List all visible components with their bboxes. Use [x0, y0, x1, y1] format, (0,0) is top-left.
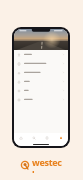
button[interactable] [14, 77, 68, 86]
button[interactable] [14, 50, 68, 59]
staticText: westech [32, 156, 64, 173]
button[interactable] [14, 95, 68, 104]
button[interactable] [14, 86, 68, 95]
button[interactable]: Search [27, 133, 40, 143]
button[interactable] [14, 59, 68, 68]
button[interactable] [14, 68, 68, 77]
button[interactable]: Messages [40, 133, 54, 143]
button[interactable]: westech [20, 156, 64, 173]
button[interactable]: Profile [54, 133, 68, 143]
button[interactable]: Home [14, 133, 27, 143]
